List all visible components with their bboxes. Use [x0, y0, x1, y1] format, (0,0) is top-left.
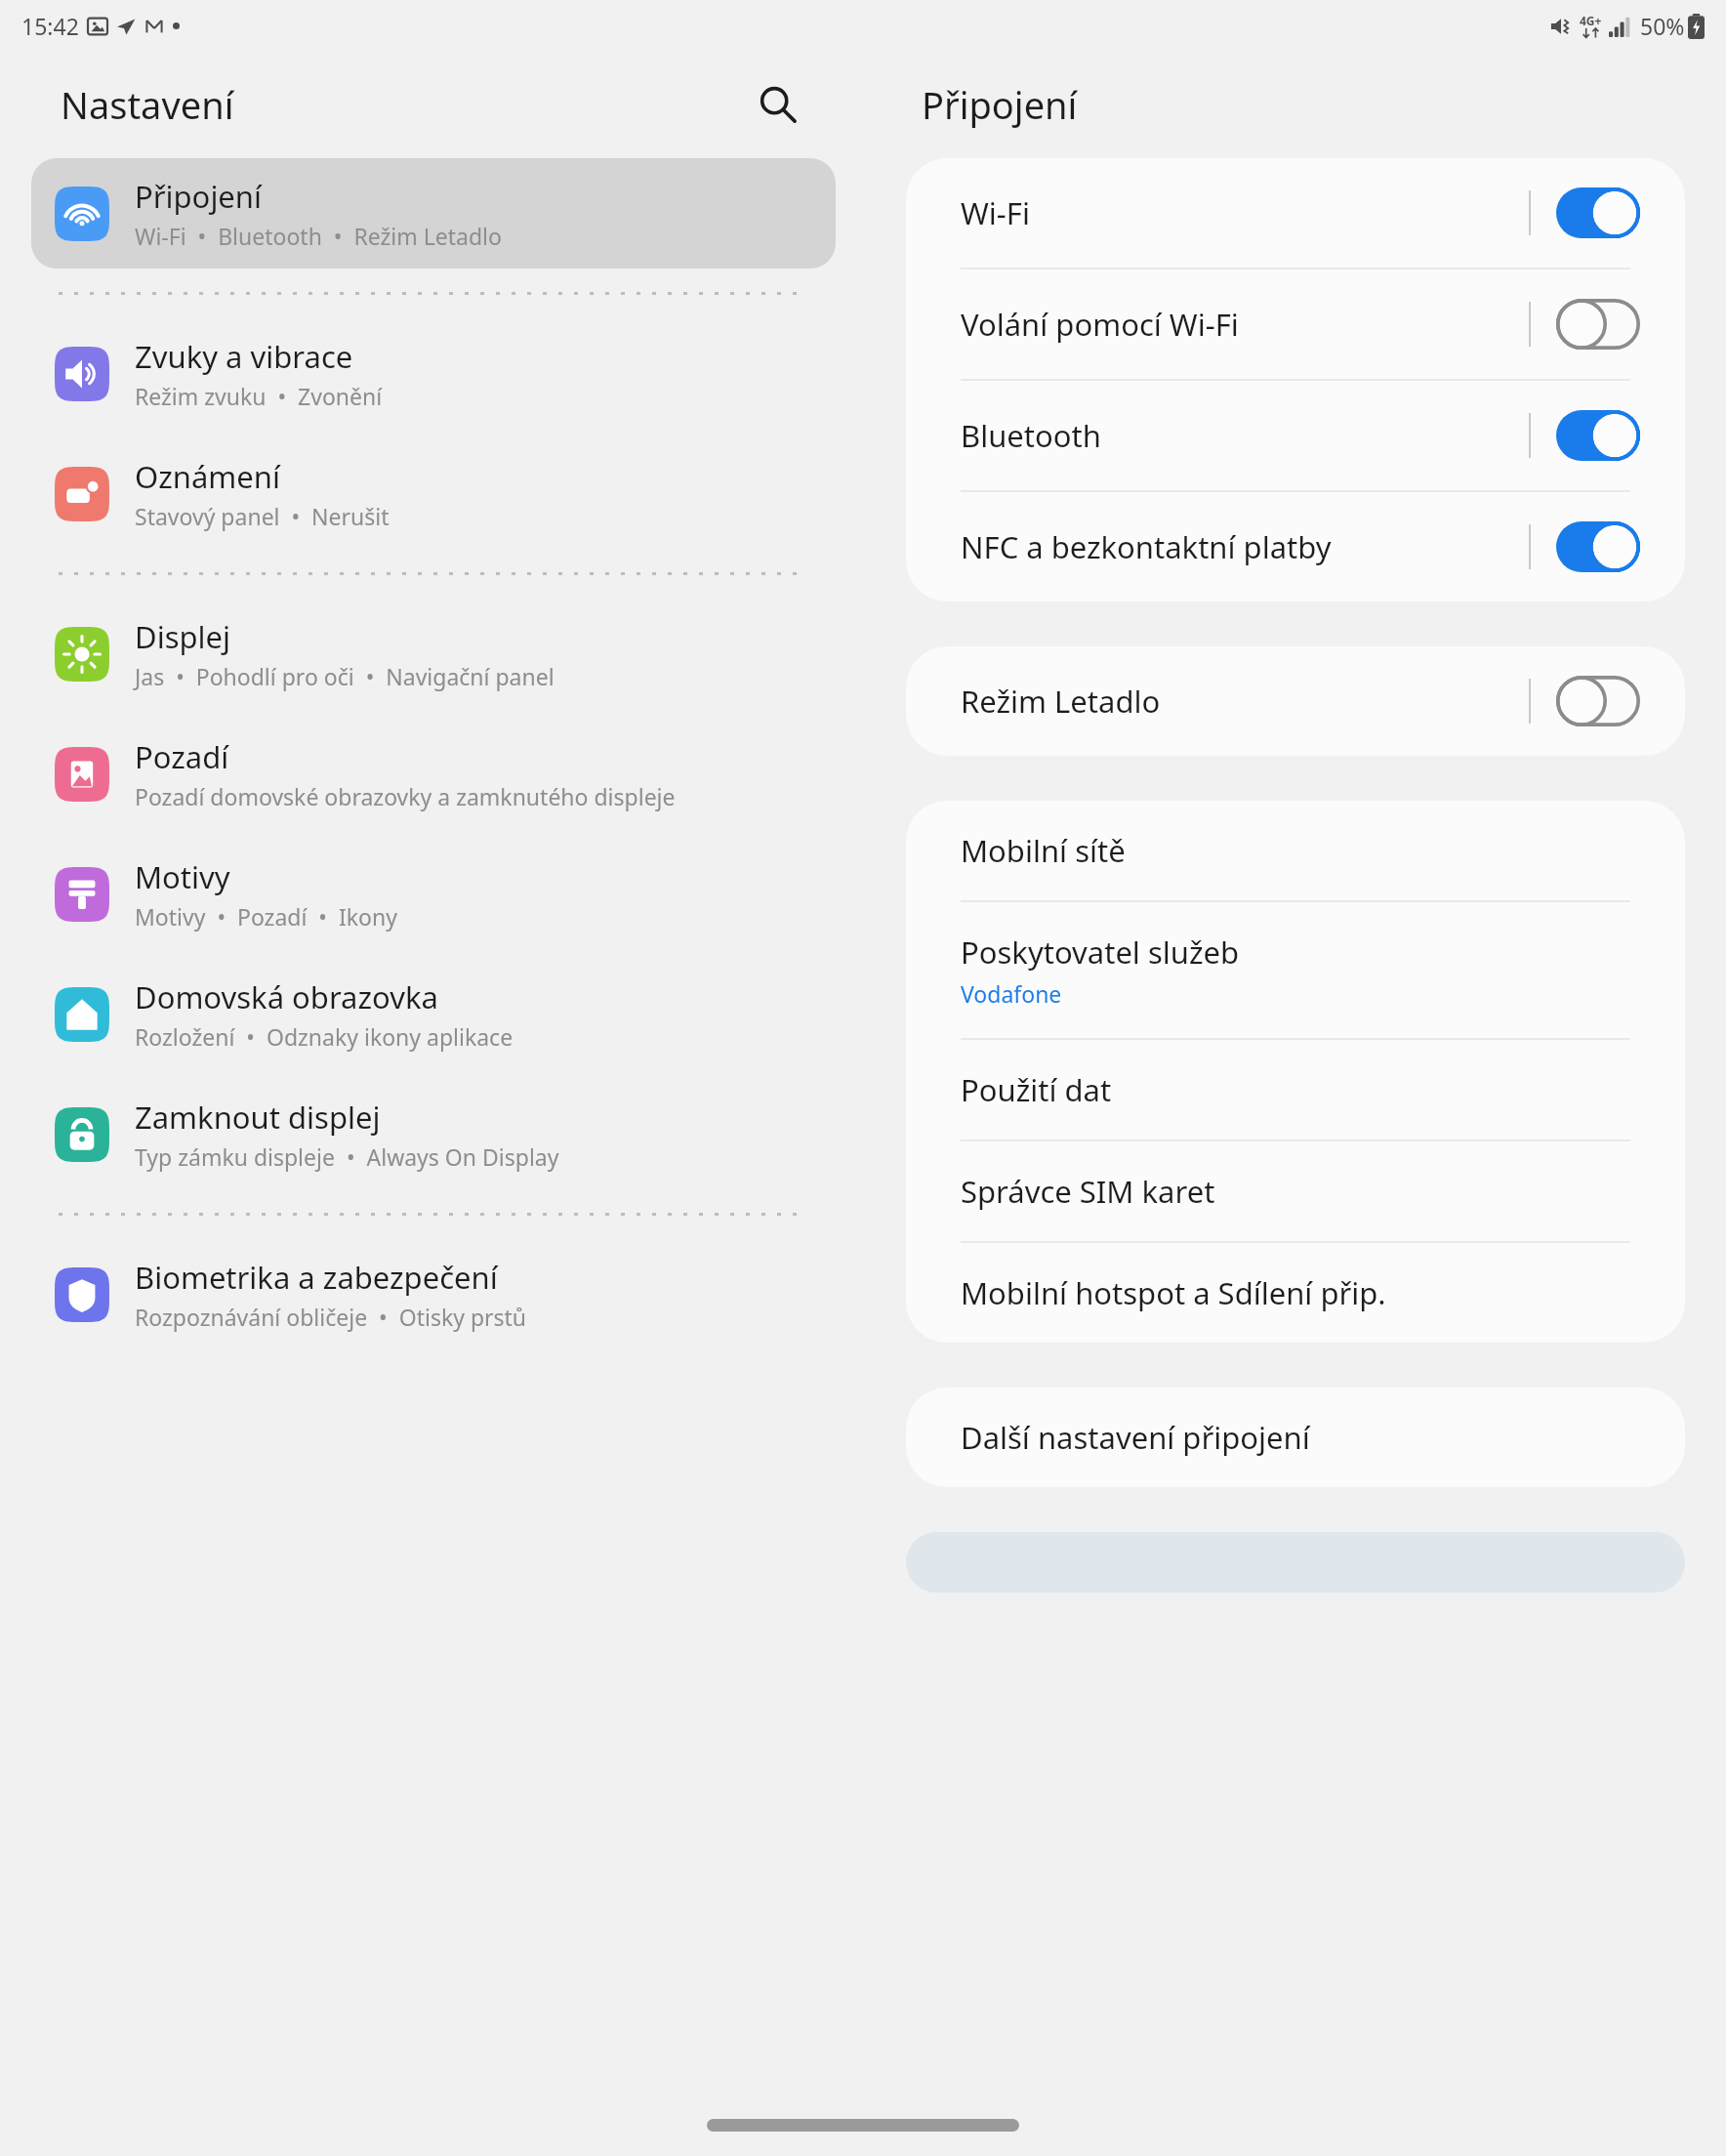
staticText: Stavový panel • Nerušit [135, 501, 390, 531]
button[interactable]: Zvuky a vibrace [31, 318, 836, 429]
button[interactable]: Biometrika a zabezpečení [31, 1239, 836, 1349]
staticText: Motivy [135, 856, 230, 897]
button[interactable]: Správce SIM karet [906, 1141, 1685, 1241]
button[interactable]: Off [1556, 676, 1640, 726]
button[interactable]: Zamknout displej [31, 1079, 836, 1189]
button[interactable]: On [1556, 410, 1640, 461]
button[interactable]: Režim Letadlo [906, 646, 1685, 756]
staticText: Mobilní sítě [961, 830, 1126, 871]
button[interactable]: Motivy [31, 839, 836, 949]
button[interactable]: Poskytovatel služeb [906, 902, 1685, 1038]
button[interactable]: NFC a bezkontaktní platby [906, 492, 1685, 601]
staticText: Wi-Fi [961, 192, 1030, 233]
staticText: Rozpoznávání obličeje • Otisky prstů [135, 1302, 527, 1332]
button[interactable]: Mobilní hotspot a Sdílení přip. [906, 1243, 1685, 1343]
staticText: Volání pomocí Wi-Fi [961, 304, 1239, 345]
button[interactable]: Bluetooth [906, 381, 1685, 490]
button[interactable]: Použití dat [906, 1040, 1685, 1140]
staticText: Pozadí [135, 736, 229, 777]
staticText: 50% [1640, 11, 1685, 41]
staticText: Další nastavení připojení [961, 1417, 1310, 1458]
staticText: NFC a bezkontaktní platby [961, 526, 1332, 567]
button[interactable]: Pozadí [31, 719, 836, 829]
button[interactable]: On [1556, 187, 1640, 238]
staticText: Pozadí domovské obrazovky a zamknutého d… [135, 781, 676, 811]
staticText: Oznámení [135, 456, 280, 497]
button[interactable] [906, 1532, 1685, 1593]
staticText: Domovská obrazovka [135, 976, 438, 1017]
staticText: Nastavení [61, 79, 234, 130]
button[interactable]: Displej [31, 599, 836, 709]
staticText: Motivy • Pozadí • Ikony [135, 901, 397, 932]
staticText: Jas • Pohodlí pro oči • Navigační panel [135, 661, 555, 691]
staticText: Biometrika a zabezpečení [135, 1257, 498, 1298]
staticText: Zamknout displej [135, 1097, 381, 1138]
button[interactable]: Mobilní sítě [906, 801, 1685, 900]
staticText: Mobilní hotspot a Sdílení přip. [961, 1272, 1386, 1313]
staticText: Vodafone [961, 978, 1062, 1009]
button[interactable]: Off [1556, 299, 1640, 350]
staticText: Připojení [135, 176, 263, 217]
staticText: Připojení [922, 79, 1078, 130]
button[interactable]: Připojení [31, 158, 836, 269]
button[interactable]: Další nastavení připojení [906, 1388, 1685, 1487]
staticText: Wi-Fi • Bluetooth • Režim Letadlo [135, 221, 502, 251]
staticText: Zvuky a vibrace [135, 336, 353, 377]
button[interactable]: Wi-Fi [906, 158, 1685, 268]
button[interactable]: Search [742, 68, 814, 141]
staticText: Rozložení • Odznaky ikony aplikace [135, 1021, 514, 1052]
staticText: Režim zvuku • Zvonění [135, 381, 383, 411]
staticText: Použití dat [961, 1069, 1112, 1110]
button[interactable]: Volání pomocí Wi-Fi [906, 269, 1685, 379]
staticText: 15:42 [21, 11, 79, 41]
button[interactable]: Domovská obrazovka [31, 959, 836, 1069]
staticText: Typ zámku displeje • Always On Display [135, 1141, 559, 1172]
staticText: Poskytovatel služeb [961, 932, 1240, 973]
button[interactable]: On [1556, 521, 1640, 572]
staticText: Displej [135, 616, 231, 657]
staticText: Správce SIM karet [961, 1171, 1215, 1212]
button[interactable]: Oznámení [31, 438, 836, 549]
staticText: 4G+ [1580, 13, 1602, 28]
staticText: Bluetooth [961, 415, 1101, 456]
staticText: Režim Letadlo [961, 681, 1161, 722]
